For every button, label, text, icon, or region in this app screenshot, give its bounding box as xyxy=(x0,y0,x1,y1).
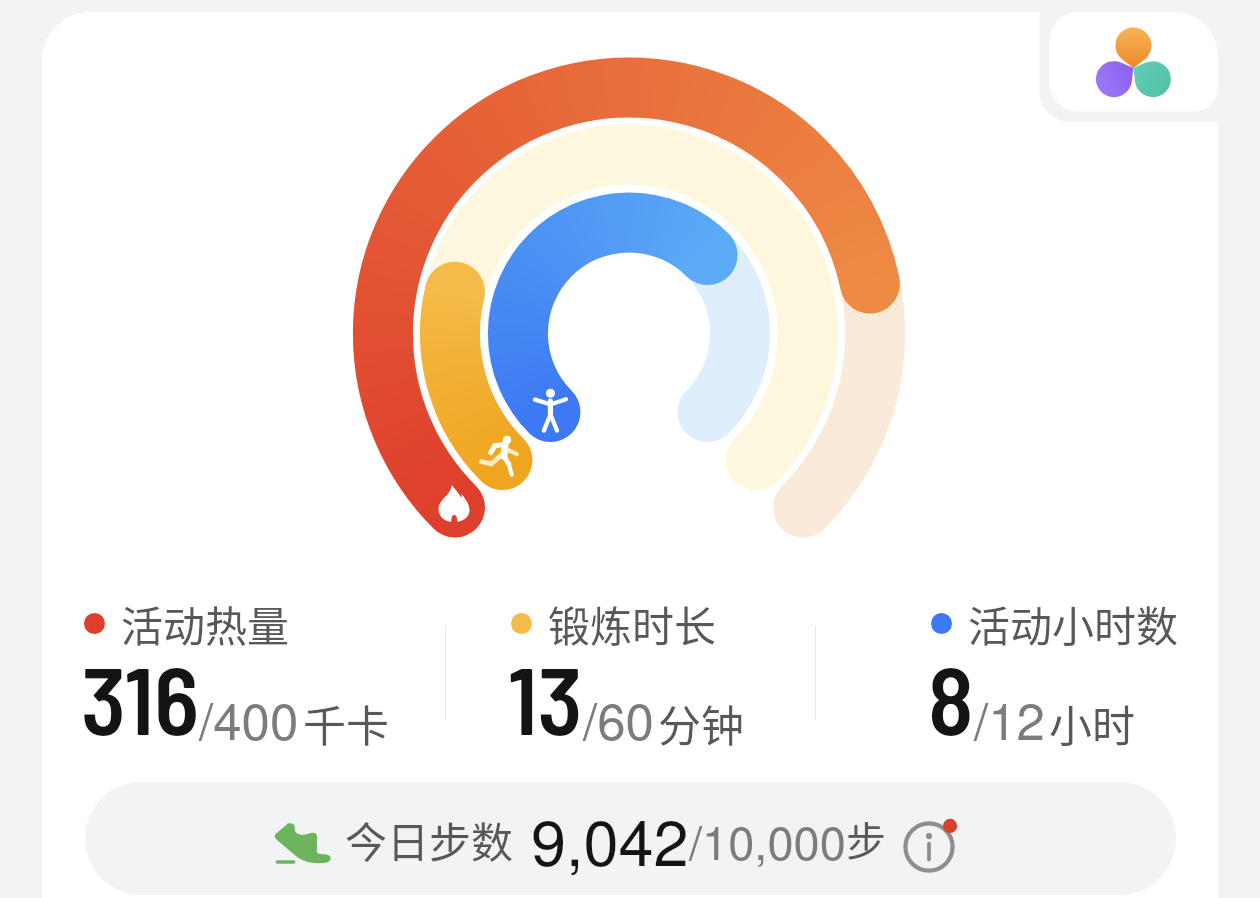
staticText: 小时 xyxy=(1049,692,1135,754)
staticText: 锻炼时长 xyxy=(548,593,717,654)
button[interactable]: Info xyxy=(898,816,960,878)
staticText: 8 xyxy=(928,641,974,754)
staticText: 13 xyxy=(508,641,583,754)
button[interactable]: Health services xyxy=(1050,12,1218,112)
staticText: 分钟 xyxy=(658,692,744,754)
staticText: /10,000 xyxy=(689,806,846,873)
button[interactable] xyxy=(42,122,1218,898)
staticText: 活动热量 xyxy=(121,593,290,654)
staticText: /60 xyxy=(583,681,654,754)
staticText: 9,042 xyxy=(531,794,689,884)
staticText: 活动小时数 xyxy=(968,593,1179,654)
staticText: /400 xyxy=(199,681,299,754)
staticText: /12 xyxy=(974,681,1045,754)
staticText: 千卡 xyxy=(303,692,389,754)
button[interactable]: 今日步数 xyxy=(85,782,1176,895)
staticText: 今日步数 xyxy=(345,809,514,870)
staticText: 步 xyxy=(846,810,886,868)
staticText: 316 xyxy=(81,641,199,754)
